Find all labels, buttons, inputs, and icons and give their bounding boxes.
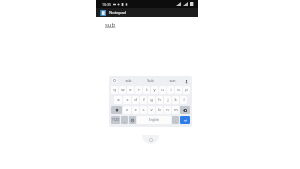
- staticText: h: [158, 97, 161, 103]
- button[interactable]: sub: [117, 76, 139, 85]
- staticText: sub: [125, 78, 132, 83]
- button[interactable]: m: [172, 106, 179, 114]
- staticText: ,: [124, 118, 126, 123]
- button[interactable]: p: [183, 86, 190, 94]
- button[interactable]: Voice input: [183, 78, 189, 84]
- button[interactable]: Enter: [180, 116, 190, 124]
- button[interactable]: English: [137, 116, 171, 124]
- staticText: z: [126, 107, 128, 113]
- button[interactable]: z: [123, 106, 131, 114]
- staticText: r: [138, 87, 140, 93]
- button[interactable]: v: [148, 106, 155, 114]
- button[interactable]: t: [143, 86, 150, 94]
- button[interactable]: b: [156, 106, 163, 114]
- staticText: Notepad: [109, 10, 127, 16]
- button[interactable]: Period: [172, 116, 179, 124]
- button[interactable]: q: [111, 86, 118, 94]
- staticText: s: [126, 97, 129, 103]
- button[interactable]: a: [114, 96, 122, 104]
- staticText: u: [161, 87, 164, 93]
- staticText: c: [142, 107, 145, 113]
- staticText: p: [185, 87, 188, 93]
- staticText: v: [150, 107, 153, 113]
- button[interactable]: r: [135, 86, 142, 94]
- button[interactable]: sub: [104, 20, 117, 30]
- staticText: y: [153, 87, 156, 93]
- button[interactable]: l: [180, 96, 187, 104]
- button[interactable]: Sub: [139, 76, 161, 85]
- staticText: sub: [105, 21, 116, 29]
- button[interactable]: j: [164, 96, 171, 104]
- button[interactable]: u: [159, 86, 166, 94]
- staticText: g: [150, 97, 153, 103]
- button[interactable]: e: [127, 86, 134, 94]
- button[interactable]: s: [123, 96, 131, 104]
- staticText: k: [174, 97, 177, 103]
- staticText: ?123: [112, 118, 119, 122]
- staticText: a: [117, 97, 120, 103]
- staticText: d: [134, 97, 137, 103]
- staticText: t: [146, 87, 148, 93]
- button[interactable]: Notepad: [96, 8, 198, 17]
- staticText: f: [143, 97, 145, 103]
- staticText: e: [129, 87, 132, 93]
- staticText: q: [113, 87, 116, 93]
- staticText: English: [149, 118, 160, 122]
- button[interactable]: o: [175, 86, 182, 94]
- staticText: w: [121, 87, 125, 93]
- button[interactable]: x: [132, 106, 139, 114]
- button[interactable]: h: [156, 96, 163, 104]
- button[interactable]: ?123: [111, 116, 120, 124]
- staticText: i: [170, 87, 172, 93]
- button[interactable]: i: [167, 86, 174, 94]
- staticText: j: [167, 97, 169, 103]
- button[interactable]: Emoji: [129, 116, 136, 124]
- button[interactable]: k: [172, 96, 179, 104]
- button[interactable]: g: [148, 96, 155, 104]
- staticText: o: [177, 87, 180, 93]
- button[interactable]: w: [119, 86, 126, 94]
- staticText: b: [158, 107, 161, 113]
- button[interactable]: Home: [142, 135, 159, 144]
- button[interactable]: Backspace: [180, 106, 190, 114]
- button[interactable]: f: [140, 96, 147, 104]
- button[interactable]: Comma: [121, 116, 128, 124]
- button[interactable]: y: [151, 86, 158, 94]
- button[interactable]: d: [132, 96, 139, 104]
- button[interactable]: Shift: [111, 106, 122, 114]
- staticText: Sub: [147, 78, 154, 83]
- staticText: x: [134, 107, 137, 113]
- button[interactable]: Sticker: [112, 78, 117, 83]
- button[interactable]: c: [140, 106, 147, 114]
- staticText: m: [174, 107, 178, 113]
- button[interactable]: n: [164, 106, 171, 114]
- button[interactable]: sun: [161, 76, 183, 85]
- staticText: sun: [169, 78, 176, 83]
- staticText: 10:35: [102, 2, 111, 7]
- staticText: n: [166, 107, 169, 113]
- staticText: .: [175, 118, 177, 123]
- staticText: l: [183, 97, 185, 103]
